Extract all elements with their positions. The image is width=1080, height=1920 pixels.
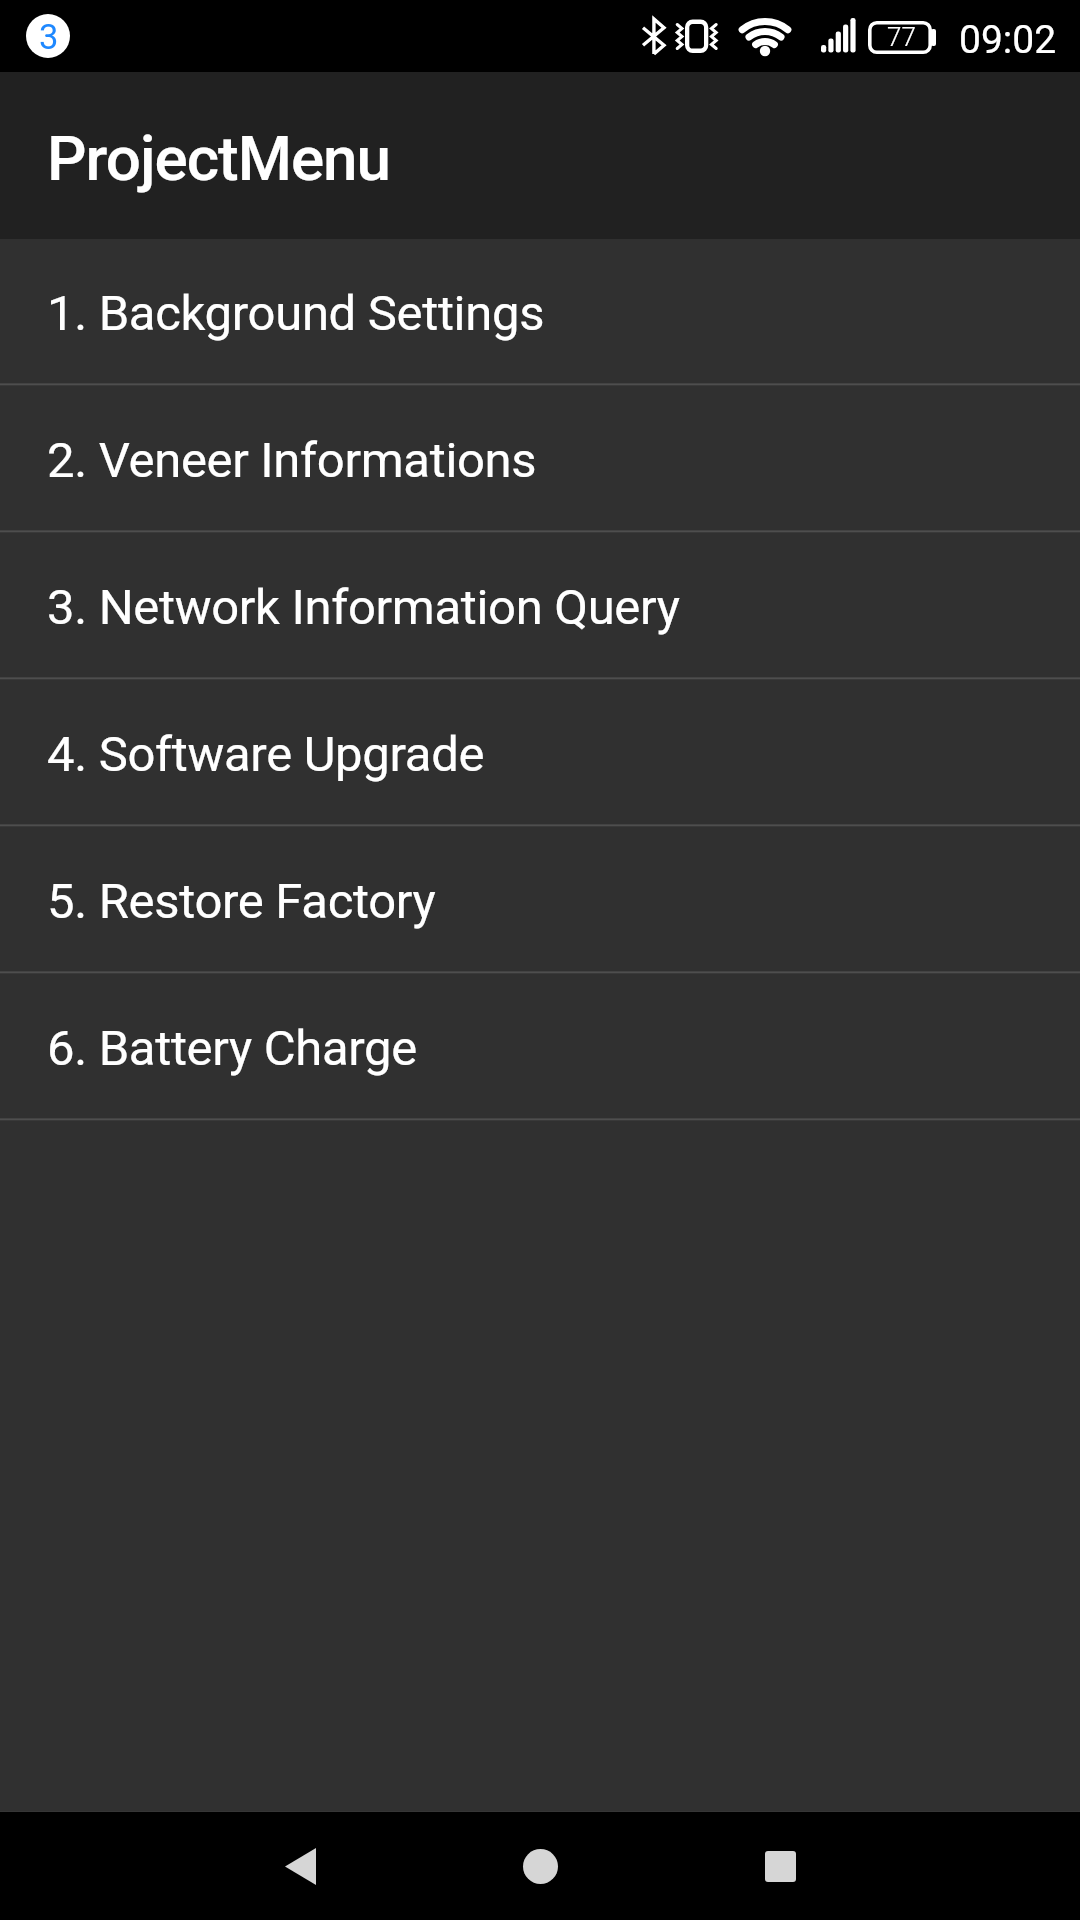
staticText: 3	[39, 17, 59, 57]
button[interactable]: 6. Battery Charge	[0, 974, 1080, 1118]
button[interactable]: Recents	[725, 1812, 835, 1920]
button[interactable]: 5. Restore Factory	[0, 827, 1080, 971]
button[interactable]: Back	[245, 1812, 355, 1920]
button[interactable]: 3. Network Information Query	[0, 533, 1080, 677]
staticText: 6. Battery Charge	[47, 1020, 417, 1077]
button[interactable]: 2. Veneer Informations	[0, 386, 1080, 530]
staticText: 2. Veneer Informations	[47, 432, 537, 489]
staticText: 4. Software Upgrade	[47, 726, 485, 783]
staticText: 77	[887, 22, 916, 52]
staticText: 1. Background Settings	[47, 285, 545, 342]
staticText: 3. Network Information Query	[47, 579, 680, 636]
staticText: 5. Restore Factory	[47, 873, 436, 930]
button[interactable]: 1. Background Settings	[0, 239, 1080, 383]
staticText: ProjectMenu	[47, 122, 391, 195]
button[interactable]: 4. Software Upgrade	[0, 680, 1080, 824]
staticText: 09:02	[959, 17, 1057, 63]
button[interactable]: Home	[485, 1812, 595, 1920]
